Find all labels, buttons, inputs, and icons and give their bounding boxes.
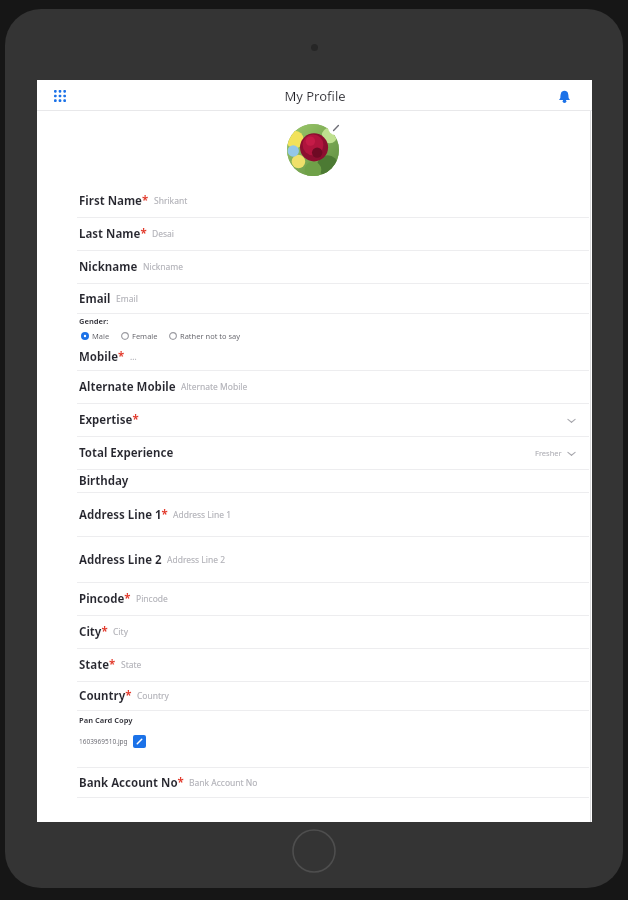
staticText: My Profile — [284, 87, 346, 105]
button[interactable]: Pan Card Copy — [37, 711, 592, 768]
button[interactable]: Country* — [37, 682, 592, 711]
button[interactable]: Menu — [47, 83, 73, 109]
staticText: 1603969510.jpg — [79, 737, 128, 746]
button[interactable]: First Name* — [37, 185, 592, 218]
staticText: Nickname — [143, 261, 184, 273]
staticText: Female — [132, 331, 158, 341]
staticText: State* — [79, 657, 116, 673]
staticText: Pincode* — [79, 591, 131, 607]
staticText: Bank Account No* — [79, 775, 184, 791]
button[interactable]: Alternate Mobile — [37, 371, 592, 404]
staticText: Shrikant — [154, 195, 188, 207]
staticText: Email — [116, 293, 138, 305]
staticText: Male — [92, 331, 110, 341]
button[interactable]: Female — [119, 328, 160, 344]
staticText: Gender: — [79, 316, 109, 326]
button[interactable]: Pincode* — [37, 583, 592, 616]
button[interactable]: Address Line 2 — [37, 537, 592, 583]
staticText: Pan Card Copy — [79, 715, 133, 725]
staticText: City* — [79, 624, 108, 640]
staticText: Expertise* — [79, 412, 139, 428]
staticText: City — [113, 626, 128, 638]
staticText: First Name* — [79, 193, 149, 209]
button[interactable]: Nickname — [37, 251, 592, 284]
staticText: Address Line 1* — [79, 507, 168, 523]
staticText: Alternate Mobile — [181, 381, 248, 393]
button[interactable]: Male — [79, 328, 112, 344]
staticText: Address Line 2 — [79, 552, 162, 568]
staticText: Last Name* — [79, 226, 147, 242]
button[interactable]: Birthday — [37, 470, 592, 493]
button[interactable]: Notifications — [552, 84, 576, 108]
staticText: Pincode — [136, 593, 168, 605]
button[interactable]: Profile photo — [287, 124, 339, 176]
staticText: Country* — [79, 688, 132, 704]
staticText: Birthday — [79, 473, 129, 489]
button[interactable]: Total Experience — [37, 437, 592, 470]
staticText: Bank Account No — [189, 777, 258, 789]
staticText: Alternate Mobile — [79, 379, 176, 395]
button[interactable]: Rather not to say — [167, 328, 243, 344]
button[interactable]: Email — [37, 284, 592, 314]
staticText: Nickname — [79, 259, 138, 275]
staticText: Address Line 2 — [167, 554, 226, 566]
button[interactable]: Mobile* — [37, 344, 592, 371]
button[interactable]: State* — [37, 649, 592, 682]
staticText: … — [130, 351, 137, 363]
button[interactable]: Bank Account No* — [37, 768, 592, 798]
staticText: Desai — [152, 228, 175, 240]
staticText: Address Line 1 — [173, 509, 232, 521]
button[interactable]: Expertise* — [37, 404, 592, 437]
button[interactable]: Edit Pan Card Copy — [133, 735, 146, 748]
staticText: Country — [137, 690, 169, 702]
button[interactable]: Last Name* — [37, 218, 592, 251]
staticText: Fresher — [535, 448, 562, 458]
staticText: Total Experience — [79, 445, 174, 461]
staticText: Mobile* — [79, 349, 125, 365]
staticText: Rather not to say — [180, 331, 241, 341]
button[interactable]: Edit photo — [328, 120, 343, 135]
staticText: State — [121, 659, 142, 671]
button[interactable]: City* — [37, 616, 592, 649]
staticText: Email — [79, 291, 111, 307]
button[interactable]: Address Line 1* — [37, 493, 592, 537]
